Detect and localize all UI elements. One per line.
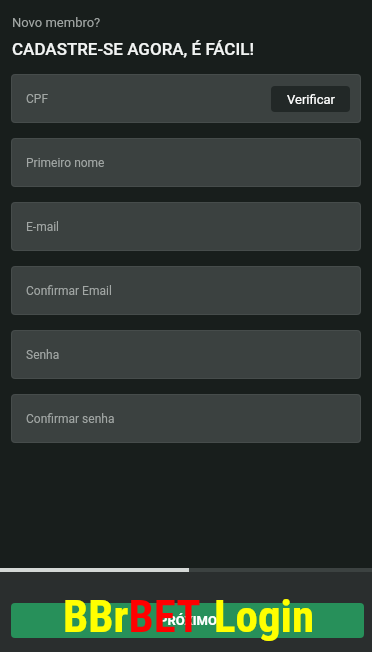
staticText: Primeiro nome (26, 156, 105, 170)
staticText: Confirmar Email (26, 284, 112, 298)
button[interactable]: Senha (11, 330, 361, 379)
staticText: CADASTRE-SE AGORA, É FÁCIL! (12, 39, 254, 59)
staticText: Login (214, 590, 315, 643)
staticText: CPF (26, 92, 49, 106)
staticText: Verificar (287, 92, 335, 107)
button[interactable]: CPF (11, 74, 361, 123)
staticText: PRÓXIMO (159, 613, 217, 628)
button[interactable]: PRÓXIMO (11, 603, 364, 638)
button[interactable]: Confirmar Email (11, 266, 361, 315)
button[interactable]: E-mail (11, 202, 361, 251)
staticText: BBrBET (63, 590, 201, 643)
staticText: Novo membro? (12, 15, 101, 30)
button[interactable]: Primeiro nome (11, 138, 361, 187)
staticText: Senha (26, 348, 60, 362)
staticText: Confirmar senha (26, 412, 115, 426)
staticText: E-mail (26, 220, 60, 234)
button[interactable]: Confirmar senha (11, 394, 361, 443)
button[interactable]: Verificar (271, 86, 350, 112)
